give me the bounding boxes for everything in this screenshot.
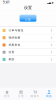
staticText: 首页 — [4, 94, 10, 98]
staticText: 购物车 — [30, 94, 39, 98]
button[interactable]: 云端 — [20, 15, 36, 22]
button[interactable]: 分类 — [14, 87, 28, 100]
staticText: 设置 — [9, 51, 15, 54]
staticText: 云端 — [25, 18, 31, 21]
staticText: 订单与物流 — [9, 29, 24, 32]
button[interactable]: 首页 — [0, 87, 14, 100]
button[interactable]: 设置 — [0, 49, 56, 56]
staticText: 设置 — [24, 5, 32, 10]
staticText: 9:41 — [3, 1, 10, 4]
button[interactable]: 我的 — [42, 87, 56, 100]
staticText: 我的 — [46, 94, 52, 98]
staticText: 优惠券包 — [9, 43, 21, 47]
button[interactable]: 帮助 — [0, 56, 56, 63]
staticText: ▂▄ ◗ — [47, 1, 53, 4]
button[interactable]: 购物车 — [28, 87, 42, 100]
staticText: 我的收藏 — [9, 36, 21, 39]
button[interactable]: 优惠券包 — [0, 41, 56, 48]
button[interactable]: 我的收藏 — [0, 34, 56, 41]
button[interactable]: 订单与物流 — [0, 27, 56, 34]
staticText: 帮助 — [9, 58, 15, 61]
staticText: 分类 — [18, 94, 24, 98]
